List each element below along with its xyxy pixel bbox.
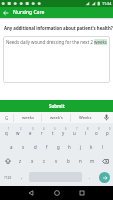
- button[interactable]: o: [91, 126, 102, 140]
- button[interactable]: ?123: [0, 168, 16, 186]
- staticText: n: [79, 158, 82, 164]
- staticText: u: [73, 130, 76, 136]
- button[interactable]: s: [17, 140, 29, 154]
- staticText: l: [102, 144, 104, 150]
- button[interactable]: i: [80, 126, 91, 140]
- button[interactable]: Submit: [0, 100, 113, 112]
- button[interactable]: j: [75, 140, 86, 154]
- staticText: a: [10, 144, 13, 150]
- staticText: h: [68, 144, 71, 150]
- staticText: k: [90, 144, 93, 150]
- staticText: ?123: [4, 175, 12, 180]
- staticText: q: [5, 130, 8, 136]
- button[interactable]: [50, 186, 64, 200]
- button[interactable]: t: [47, 126, 58, 140]
- staticText: v: [55, 158, 58, 164]
- staticText: weeks: [22, 115, 34, 121]
- button[interactable]: [99, 112, 113, 123]
- staticText: b: [67, 158, 70, 164]
- staticText: .: [89, 174, 91, 180]
- button[interactable]: [0, 7, 11, 18]
- button[interactable]: f: [41, 140, 53, 154]
- button[interactable]: w: [12, 126, 24, 140]
- button[interactable]: d: [29, 140, 41, 154]
- staticText: G: [5, 115, 9, 121]
- button[interactable]: [95, 168, 113, 186]
- staticText: t: [52, 130, 54, 136]
- staticText: p: [106, 130, 109, 136]
- button[interactable]: n: [74, 154, 86, 168]
- button[interactable]: b: [62, 154, 74, 168]
- button[interactable]: q: [0, 126, 12, 140]
- staticText: j: [80, 144, 82, 150]
- button[interactable]: G: [0, 112, 13, 123]
- button[interactable]: ,: [16, 168, 27, 186]
- staticText: Nursing Care: [13, 9, 45, 16]
- staticText: week's: [50, 115, 63, 121]
- button[interactable]: y: [58, 126, 69, 140]
- staticText: g: [57, 144, 60, 150]
- staticText: 4: [43, 127, 45, 131]
- button[interactable]: [75, 186, 89, 200]
- button[interactable]: p: [102, 126, 113, 140]
- button[interactable]: [24, 186, 38, 200]
- staticText: s: [22, 144, 25, 150]
- button[interactable]: Weeks: [71, 112, 99, 123]
- staticText: m: [90, 158, 95, 164]
- button[interactable]: week's: [42, 112, 70, 123]
- button[interactable]: l: [97, 140, 108, 154]
- staticText: o: [95, 130, 98, 136]
- staticText: 7: [76, 127, 78, 131]
- button[interactable]: r: [36, 126, 47, 140]
- staticText: 2: [20, 127, 22, 131]
- staticText: 6: [65, 127, 67, 131]
- button[interactable]: c: [38, 154, 50, 168]
- staticText: Submit: [49, 103, 65, 109]
- staticText: f: [46, 144, 48, 150]
- staticText: 1: [8, 127, 10, 131]
- staticText: z: [19, 158, 22, 164]
- button[interactable]: g: [53, 140, 64, 154]
- staticText: 8: [87, 127, 89, 131]
- staticText: e: [29, 130, 32, 136]
- button[interactable]: u: [69, 126, 80, 140]
- button[interactable]: e: [24, 126, 36, 140]
- staticText: 5: [54, 127, 56, 131]
- staticText: 11:34: [102, 1, 112, 6]
- staticText: r: [41, 130, 43, 136]
- button[interactable]: v: [50, 154, 62, 168]
- staticText: d: [34, 144, 37, 150]
- staticText: 9: [98, 127, 100, 131]
- button[interactable]: [0, 154, 15, 168]
- button[interactable]: x: [26, 154, 38, 168]
- staticText: ,: [21, 174, 23, 180]
- button[interactable]: [98, 154, 113, 168]
- staticText: 3: [32, 127, 34, 131]
- staticText: x: [31, 158, 34, 164]
- staticText: Any additional information about patient…: [4, 25, 113, 31]
- button[interactable]: weeks: [14, 112, 41, 123]
- button[interactable]: k: [86, 140, 97, 154]
- staticText: 0: [109, 127, 111, 131]
- staticText: y: [62, 130, 65, 136]
- staticText: i: [85, 130, 87, 136]
- button[interactable]: a: [5, 140, 17, 154]
- staticText: Needs daily wound dressing for the next …: [6, 39, 107, 45]
- staticText: Weeks: [79, 115, 92, 121]
- button[interactable]: z: [15, 154, 26, 168]
- button[interactable]: Needs daily wound dressing for the next …: [3, 36, 110, 83]
- button[interactable]: m: [86, 154, 98, 168]
- staticText: w: [16, 130, 20, 136]
- staticText: c: [43, 158, 46, 164]
- button[interactable]: h: [64, 140, 75, 154]
